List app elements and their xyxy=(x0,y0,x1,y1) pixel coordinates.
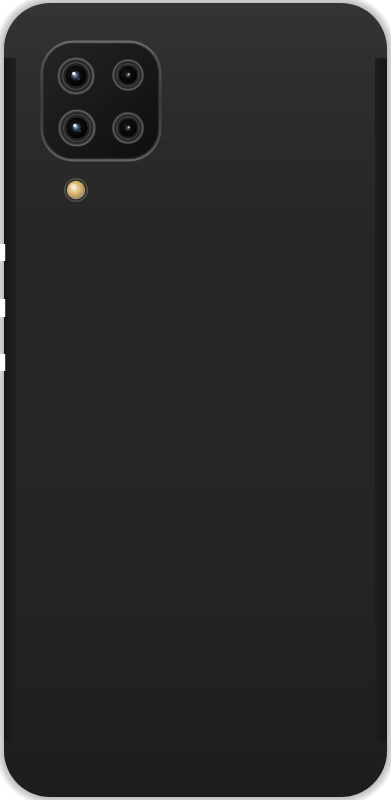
button[interactable]: Black phone back with quad camera xyxy=(0,0,391,800)
